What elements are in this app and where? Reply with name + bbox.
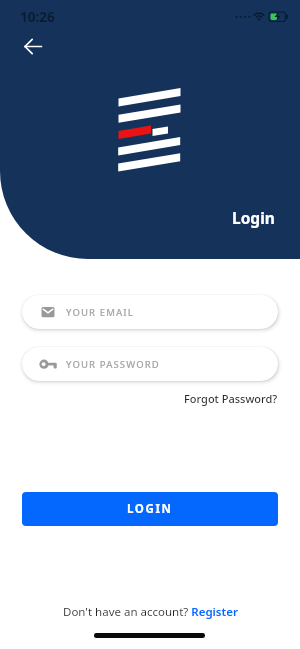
staticText: LOGIN bbox=[127, 501, 173, 517]
button[interactable]: Forgot Password? bbox=[184, 391, 278, 406]
staticText: Login bbox=[232, 207, 275, 228]
staticText: Forgot Password? bbox=[184, 391, 278, 406]
button[interactable]: LOGIN bbox=[22, 492, 278, 526]
button[interactable] bbox=[16, 32, 50, 62]
staticText: YOUR EMAIL bbox=[66, 306, 134, 319]
staticText: 10:26 bbox=[20, 8, 55, 26]
staticText: Don't have an account? Register bbox=[63, 604, 238, 620]
button[interactable]: YOUR EMAIL bbox=[22, 295, 278, 329]
button[interactable]: YOUR PASSWORD bbox=[22, 347, 278, 381]
staticText: YOUR PASSWORD bbox=[66, 358, 160, 371]
button[interactable]: Don't have an account? Register bbox=[63, 604, 238, 620]
